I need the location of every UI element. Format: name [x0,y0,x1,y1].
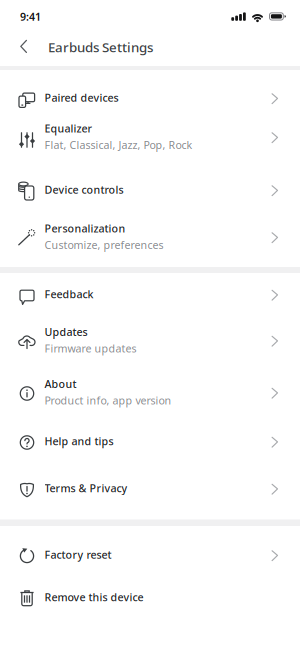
button[interactable]: Device controls [0,169,300,213]
staticText: Personalization [44,221,125,235]
button[interactable]: Paired devices [0,81,300,117]
staticText: Updates [44,325,87,339]
staticText: Device controls [44,182,123,197]
button[interactable]: Back [0,28,40,66]
staticText: 9:41 [20,9,41,24]
button[interactable]: Feedback [0,275,300,315]
button[interactable]: Remove this device [0,577,300,620]
staticText: About [44,377,76,391]
button[interactable]: Equalizer [0,117,300,159]
staticText: Paired devices [44,90,118,105]
button[interactable]: About [0,367,300,419]
staticText: Help and tips [44,434,113,448]
button[interactable]: Updates [0,315,300,367]
staticText: Product info, app version [44,393,171,408]
staticText: Equalizer [44,121,92,135]
button[interactable]: Terms & Privacy [0,465,300,513]
staticText: Flat, Classical, Jazz, Pop, Rock [44,138,192,152]
staticText: Firmware updates [44,341,136,356]
button[interactable]: Factory reset [0,535,300,577]
staticText: Earbuds Settings [48,38,153,56]
button[interactable]: Personalization [0,213,300,263]
staticText: Feedback [44,287,93,301]
staticText: Remove this device [44,590,143,604]
button[interactable]: Help and tips [0,419,300,465]
staticText: Customize, preferences [44,238,163,252]
staticText: Terms & Privacy [44,481,127,495]
staticText: Factory reset [44,547,111,562]
